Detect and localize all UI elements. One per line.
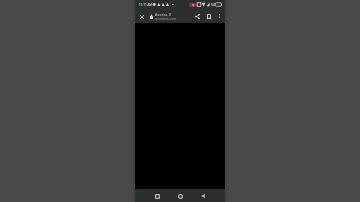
button[interactable]: Back bbox=[197, 190, 209, 202]
staticText: 11:11 AM bbox=[139, 3, 153, 7]
button[interactable]: Share bbox=[191, 10, 203, 22]
staticText: Access X bbox=[155, 12, 172, 17]
button[interactable]: Close bbox=[137, 12, 146, 21]
staticText: 54 bbox=[211, 2, 215, 7]
staticText: quantum.com bbox=[155, 17, 177, 21]
button[interactable]: More options bbox=[214, 11, 225, 21]
button[interactable]: Recent apps bbox=[151, 190, 163, 202]
button[interactable]: Bookmark bbox=[203, 10, 214, 22]
button[interactable]: Home bbox=[174, 190, 186, 202]
